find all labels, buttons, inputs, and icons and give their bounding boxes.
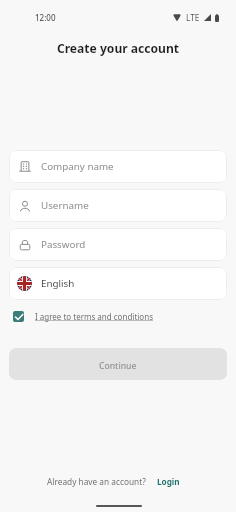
staticText: Login (157, 476, 180, 487)
button[interactable]: Agree to terms checkbox, checked (13, 311, 24, 322)
button[interactable]: Password (9, 228, 227, 261)
staticText: Create your account (0, 40, 236, 56)
staticText: Already have an account? (47, 476, 146, 487)
staticText: I agree to terms and conditions (35, 311, 153, 322)
staticText: Company name (41, 160, 114, 173)
staticText: Username (41, 199, 89, 212)
button[interactable]: Agree to terms checkbox, checked (9, 307, 157, 326)
button[interactable]: English (9, 267, 227, 300)
staticText: Password (41, 238, 86, 251)
button[interactable]: Login (157, 476, 180, 487)
staticText: English (41, 277, 75, 290)
button[interactable]: Username (9, 189, 227, 222)
staticText: Continue (99, 360, 137, 372)
staticText: 12:00 (35, 12, 56, 23)
button[interactable]: Continue (9, 348, 227, 380)
button[interactable]: Company name (9, 150, 227, 183)
staticText: LTE (186, 12, 200, 23)
